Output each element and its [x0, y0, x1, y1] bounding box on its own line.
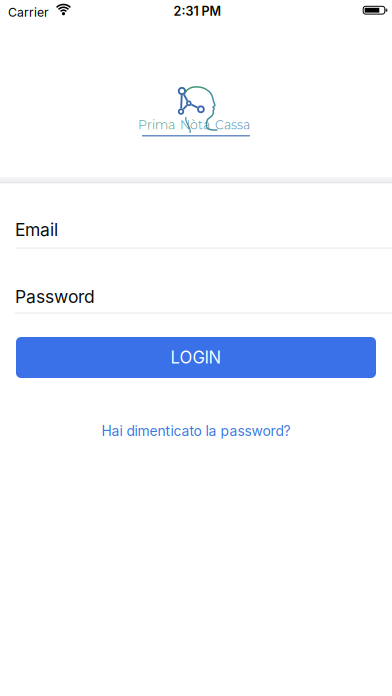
button[interactable]: LOGIN [16, 337, 376, 378]
button[interactable]: Hai dimenticato la password? [101, 423, 290, 439]
staticText: Cassa [215, 117, 250, 132]
staticText: Nòta [180, 117, 210, 132]
staticText: Hai dimenticato la password? [101, 423, 290, 439]
button[interactable]: Password [0, 249, 392, 313]
staticText: Password [15, 286, 95, 307]
staticText: LOGIN [170, 347, 221, 368]
staticText: Prima [138, 117, 175, 132]
staticText: Carrier [8, 5, 49, 20]
button[interactable]: Email [0, 183, 392, 249]
staticText: Email [15, 219, 58, 240]
staticText: 2:31 PM [173, 4, 221, 19]
